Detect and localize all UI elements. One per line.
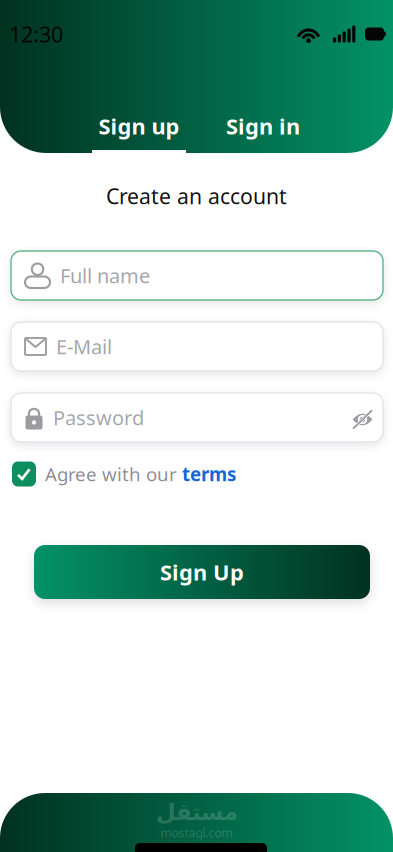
button[interactable]: Full name	[11, 251, 383, 300]
staticText: mostaql.com	[160, 825, 232, 841]
staticText: مستقل	[155, 799, 237, 825]
staticText: Sign up	[98, 111, 179, 141]
staticText: Create an account	[106, 182, 287, 210]
button[interactable]: Show password	[344, 396, 373, 438]
button[interactable]: Sign up	[92, 105, 186, 147]
staticText: 12:30	[9, 19, 63, 49]
staticText: Full name	[60, 262, 150, 289]
staticText: E-Mail	[56, 333, 112, 360]
button[interactable]: Password	[11, 393, 383, 442]
button[interactable]: Sign Up	[34, 545, 370, 599]
staticText: Agree with our	[45, 462, 182, 486]
staticText: Password	[53, 404, 144, 431]
staticText: Sign in	[226, 111, 300, 141]
button[interactable]: Sign in	[216, 105, 310, 147]
button[interactable]: terms	[182, 462, 236, 486]
button[interactable]: E-Mail	[11, 322, 383, 371]
staticText: Sign Up	[160, 557, 244, 587]
staticText: terms	[182, 462, 236, 486]
button[interactable]: Agree with our terms	[12, 461, 36, 486]
